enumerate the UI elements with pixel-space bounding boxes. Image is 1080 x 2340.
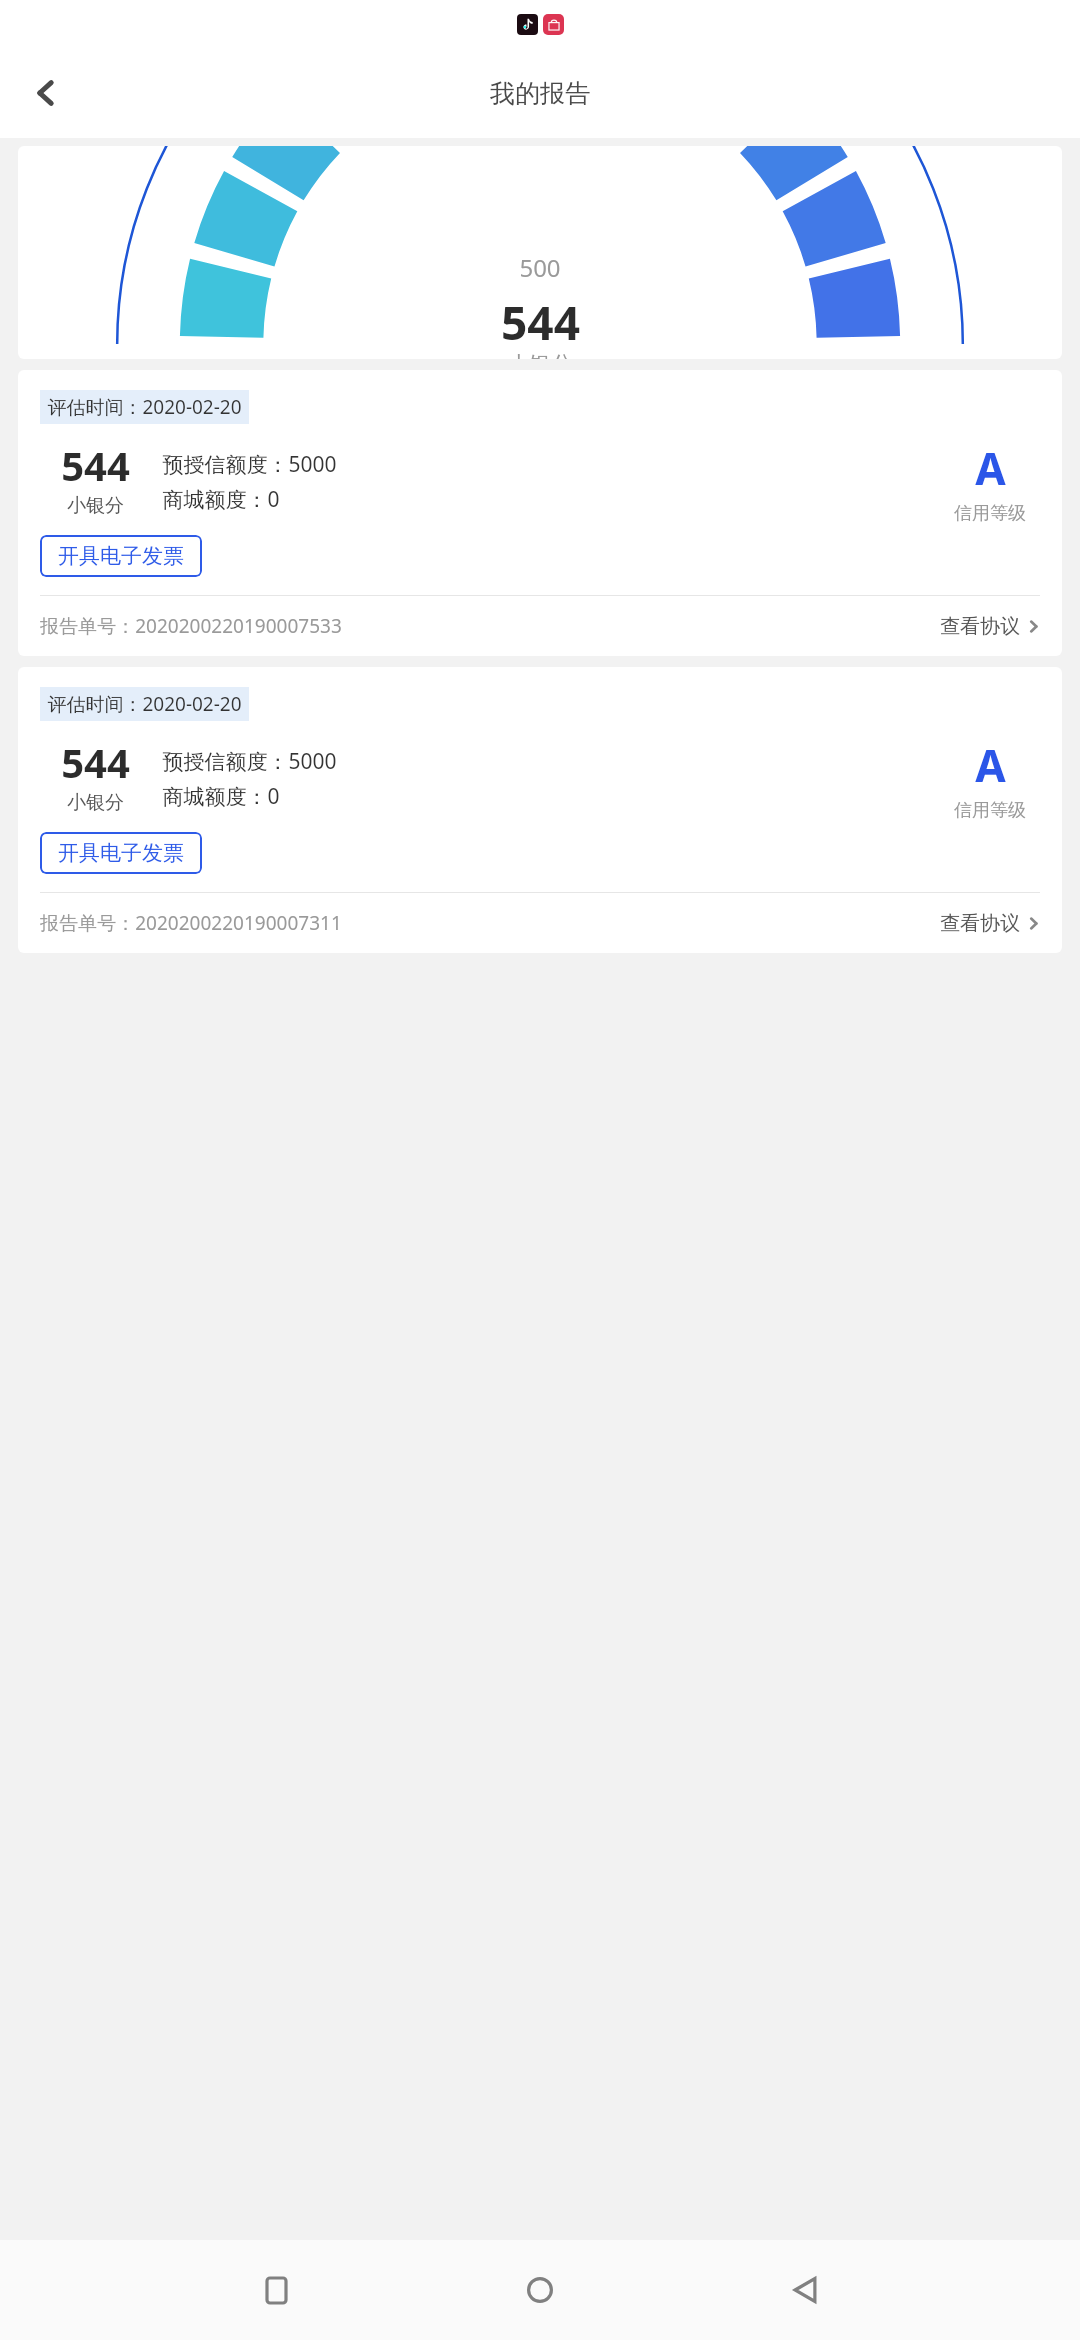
staticText: 信用等级 (954, 799, 1026, 822)
button[interactable]: 评估时间：2020-02-20 (18, 370, 1062, 656)
staticText: 查看协议 (940, 911, 1020, 936)
staticText: 预授信额度：5000 (162, 747, 337, 776)
button[interactable]: 查看协议 (940, 911, 1040, 936)
staticText: 报告单号：2020200220190007533 (40, 613, 342, 639)
staticText: 评估时间：2020-02-20 (47, 691, 242, 717)
staticText: 开具电子发票 (58, 543, 184, 569)
staticText: 开具电子发票 (58, 840, 184, 866)
staticText: A (975, 438, 1006, 498)
button[interactable]: Home (511, 2261, 569, 2319)
button[interactable]: 评估时间：2020-02-20 (18, 667, 1062, 953)
staticText: 小银分 (67, 791, 124, 815)
staticText: 小银分 (67, 494, 124, 518)
staticText: 商城额度：0 (162, 485, 280, 514)
staticText: 544 (501, 291, 580, 354)
staticText: 544 (61, 438, 130, 492)
staticText: 小银分 (507, 351, 573, 359)
button[interactable]: 开具电子发票 (40, 832, 202, 874)
staticText: 信用等级 (954, 502, 1026, 525)
staticText: 报告单号：2020200220190007311 (40, 910, 342, 936)
staticText: 我的报告 (490, 78, 590, 109)
staticText: 544 (61, 735, 130, 789)
staticText: 查看协议 (940, 614, 1020, 639)
staticText: 500 (519, 251, 561, 284)
staticText: 评估时间：2020-02-20 (47, 394, 242, 420)
staticText: 商城额度：0 (162, 782, 280, 811)
button[interactable]: 查看协议 (940, 614, 1040, 639)
button[interactable]: Recent apps (247, 2261, 305, 2319)
button[interactable]: Back (18, 65, 74, 121)
staticText: A (975, 735, 1006, 795)
staticText: 预授信额度：5000 (162, 450, 337, 479)
button[interactable]: 开具电子发票 (40, 535, 202, 577)
button[interactable]: Back (776, 2261, 834, 2319)
